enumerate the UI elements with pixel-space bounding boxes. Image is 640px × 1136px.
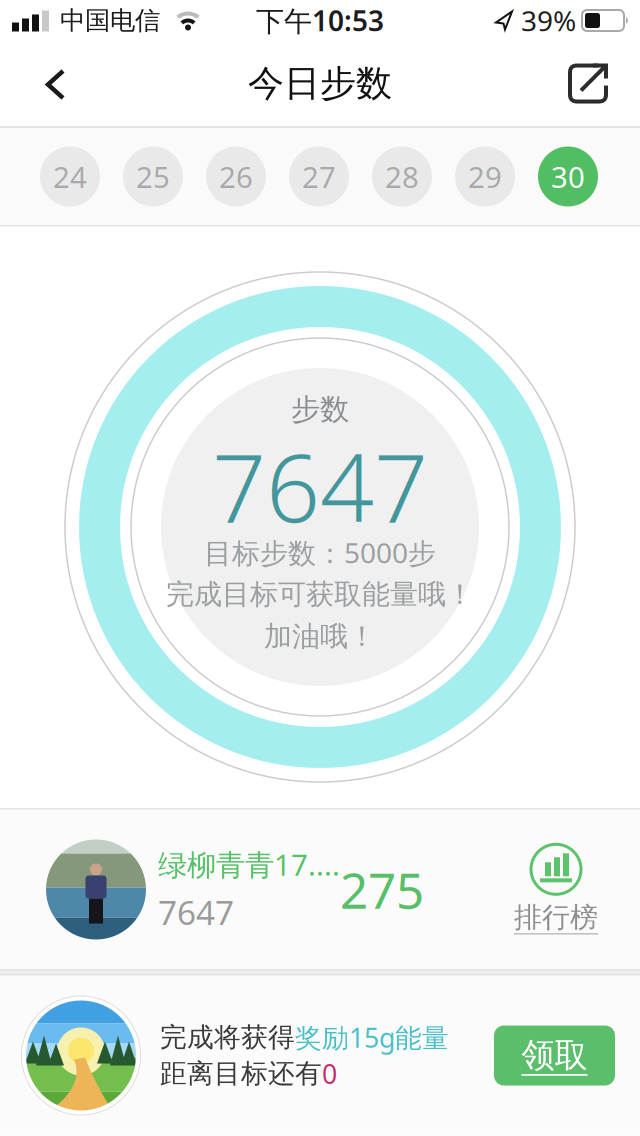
staticText: 下午10:53	[256, 2, 384, 39]
button[interactable]: 24	[40, 146, 100, 206]
staticText: 24	[53, 157, 87, 196]
staticText: 今日步数	[248, 61, 392, 106]
button[interactable]: 27	[289, 146, 349, 206]
button[interactable]: 领取	[494, 1025, 640, 1085]
staticText: 28	[385, 157, 419, 196]
staticText: 加油哦！	[264, 619, 376, 654]
staticText: 步数	[291, 391, 349, 427]
staticText: 领取	[521, 1035, 587, 1076]
staticText: 27	[302, 157, 336, 196]
button[interactable]: 绿柳青青17....	[0, 839, 424, 939]
staticText: 距离目标还有	[160, 1057, 322, 1090]
staticText: 绿柳青青17....	[158, 845, 340, 884]
button[interactable]	[0, 67, 66, 100]
button[interactable]: 28	[372, 146, 432, 206]
staticText: 中国电信	[60, 5, 160, 36]
staticText: 26	[219, 157, 253, 196]
staticText: 奖励15g能量	[295, 1020, 449, 1055]
button[interactable]: 30	[538, 146, 598, 206]
button[interactable]: 25	[123, 146, 183, 206]
button[interactable]	[568, 63, 640, 103]
button[interactable]: 29	[455, 146, 515, 206]
staticText: 排行榜	[514, 900, 598, 935]
staticText: 0	[322, 1056, 337, 1091]
button[interactable]: 排行榜	[514, 844, 640, 935]
staticText: 7647	[158, 890, 234, 934]
staticText: 25	[136, 157, 170, 196]
staticText: 完成目标可获取能量哦！	[166, 577, 474, 612]
staticText: 39%	[521, 2, 576, 39]
staticText: 29	[468, 157, 502, 196]
staticText: 目标步数：5000步	[204, 534, 436, 571]
staticText: 30	[551, 157, 585, 196]
staticText: 7647	[212, 423, 428, 548]
staticText: 完成将获得	[160, 1021, 295, 1054]
button[interactable]: 26	[206, 146, 266, 206]
staticText: 275	[340, 857, 424, 922]
